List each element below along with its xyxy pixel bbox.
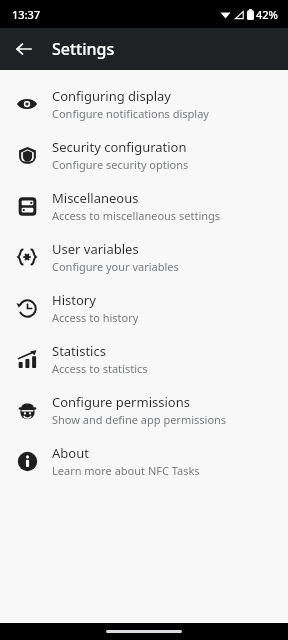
staticText: 13:37 <box>12 7 41 22</box>
staticText: Security configuration <box>52 138 187 156</box>
button[interactable]: Back <box>6 31 42 67</box>
button[interactable]: Configure permissions <box>0 384 288 435</box>
staticText: User variables <box>52 240 139 258</box>
button[interactable]: About <box>0 435 288 486</box>
staticText: Configure security options <box>52 157 189 172</box>
staticText: Access to history <box>52 310 139 325</box>
staticText: About <box>52 444 89 462</box>
staticText: 42% <box>256 7 278 22</box>
button[interactable]: Miscellaneous <box>0 180 288 231</box>
staticText: Access to statistics <box>52 361 148 376</box>
staticText: Configuring display <box>52 87 171 105</box>
staticText: History <box>52 291 96 309</box>
staticText: Settings <box>52 38 115 60</box>
button[interactable]: Configuring display <box>0 78 288 129</box>
staticText: Configure your variables <box>52 259 179 274</box>
staticText: Configure permissions <box>52 393 190 411</box>
button[interactable]: User variables <box>0 231 288 282</box>
button[interactable]: Security configuration <box>0 129 288 180</box>
staticText: Configure notifications display <box>52 106 209 121</box>
staticText: Statistics <box>52 342 106 360</box>
staticText: Access to miscellaneous settings <box>52 208 221 223</box>
button[interactable]: History <box>0 282 288 333</box>
button[interactable]: Statistics <box>0 333 288 384</box>
staticText: Miscellaneous <box>52 189 139 207</box>
staticText: Learn more about NFC Tasks <box>52 463 200 478</box>
staticText: Show and define app permissions <box>52 412 227 427</box>
